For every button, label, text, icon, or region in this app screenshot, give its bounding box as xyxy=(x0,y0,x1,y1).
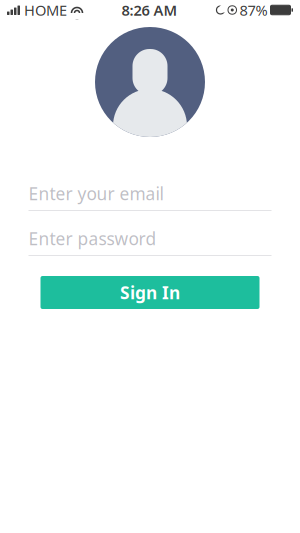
button[interactable]: Sign In xyxy=(40,276,259,309)
staticText: 8:26 AM xyxy=(121,0,177,20)
staticText: Sign In xyxy=(120,281,180,304)
staticText: HOME xyxy=(24,0,67,20)
staticText: Enter password xyxy=(28,227,156,250)
staticText: 87% xyxy=(239,0,267,20)
staticText: Enter your email xyxy=(28,182,163,205)
